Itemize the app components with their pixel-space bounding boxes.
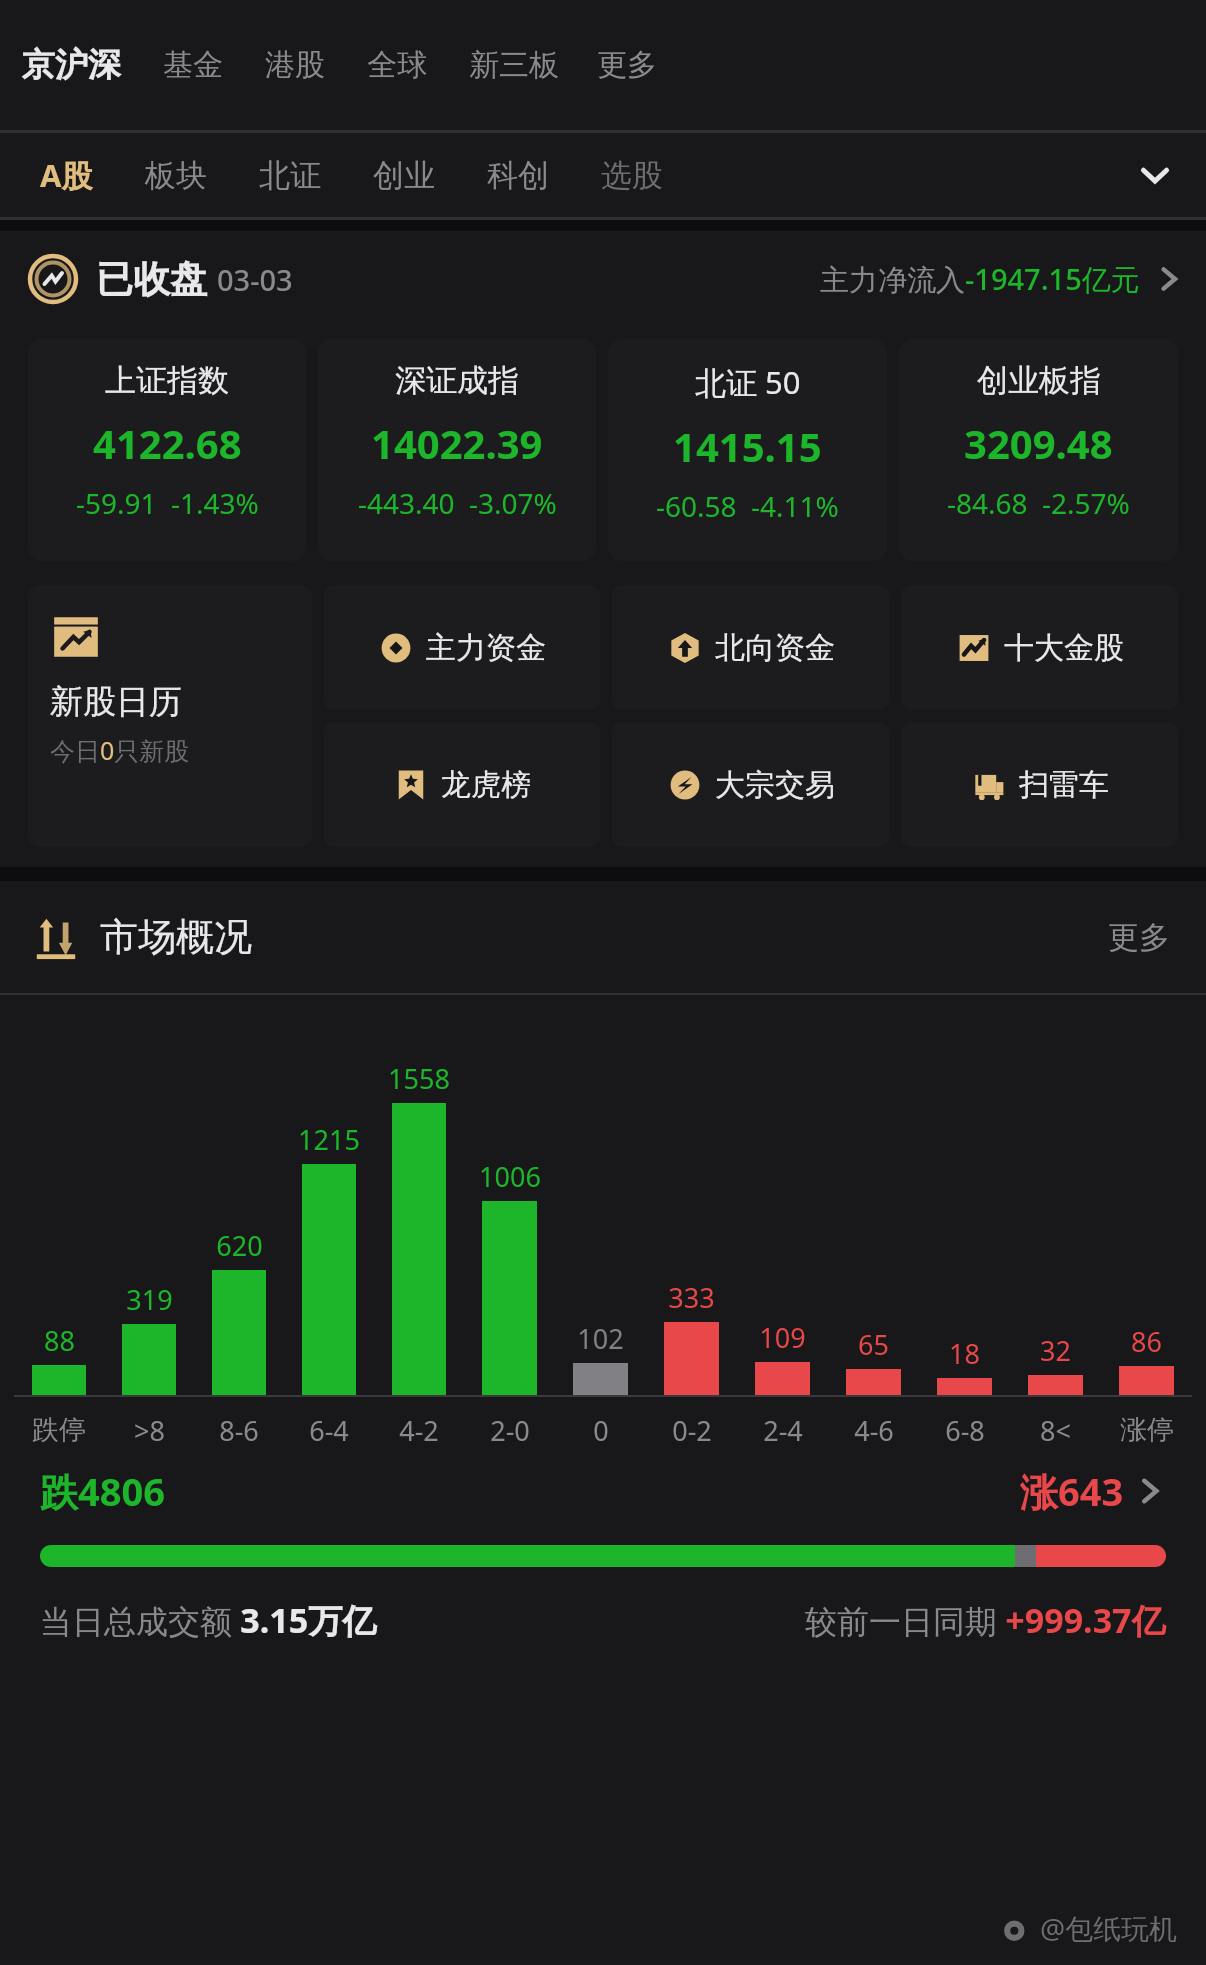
button[interactable]: 新三板	[469, 38, 559, 92]
staticText: -1.43%	[171, 484, 259, 522]
staticText: 已收盘	[96, 256, 207, 303]
staticText: 620	[216, 1227, 263, 1264]
button[interactable]: 已收盘	[0, 231, 1206, 327]
staticText: 18	[949, 1335, 980, 1372]
button[interactable]: 科创	[487, 148, 549, 203]
staticText: 4-6	[854, 1412, 894, 1449]
button[interactable]: 主力资金	[324, 585, 600, 710]
button[interactable]: 扫雷车	[901, 722, 1178, 847]
button[interactable]: 大宗交易	[612, 722, 889, 847]
staticText: 当日总成交额 3.15万亿	[40, 1597, 377, 1643]
button[interactable]: 北证 50	[608, 339, 887, 561]
staticText: 北证	[259, 156, 321, 195]
staticText: 8<	[1040, 1412, 1071, 1449]
staticText: >8	[134, 1412, 165, 1449]
button[interactable]: 港股	[265, 38, 325, 92]
staticText: 32	[1040, 1332, 1071, 1369]
staticText: 涨停	[1120, 1413, 1174, 1447]
staticText: 创业	[373, 156, 435, 195]
staticText: 基金	[163, 46, 223, 84]
staticText: 龙虎榜	[441, 766, 531, 804]
staticText: 创业板指	[977, 361, 1101, 400]
staticText: 北向资金	[715, 629, 835, 667]
staticText: 6-4	[309, 1412, 349, 1449]
staticText: -443.40	[358, 484, 455, 522]
staticText: 03-03	[217, 260, 293, 299]
staticText: 港股	[265, 46, 325, 84]
staticText: 14022.39	[371, 416, 543, 470]
button[interactable]: 板块	[145, 148, 207, 203]
staticText: 板块	[145, 156, 207, 195]
button[interactable]: 更多	[1100, 910, 1178, 965]
staticText: 2-0	[490, 1412, 530, 1449]
staticText: 十大金股	[1004, 629, 1124, 667]
staticText: 8-6	[219, 1412, 259, 1449]
staticText: 4-2	[399, 1412, 439, 1449]
button[interactable]: 北向资金	[612, 585, 889, 710]
button[interactable]: 创业	[373, 148, 435, 203]
button[interactable]: 京沪深	[22, 36, 121, 94]
staticText: 86	[1131, 1323, 1162, 1360]
button[interactable]: 上证指数	[28, 339, 306, 561]
staticText: 扫雷车	[1019, 766, 1109, 804]
staticText: 109	[759, 1319, 806, 1356]
button[interactable]: 选股	[601, 148, 663, 203]
button[interactable]: 更多	[597, 38, 657, 92]
button[interactable]: 全球	[367, 38, 427, 92]
staticText: 涨643	[1020, 1465, 1124, 1517]
button[interactable]: 跌4806	[40, 1465, 1166, 1517]
button[interactable]: A股	[40, 146, 93, 204]
button[interactable]: 十大金股	[901, 585, 1178, 710]
button[interactable]: 龙虎榜	[324, 722, 600, 847]
staticText: 1558	[388, 1060, 450, 1097]
staticText: 市场概况	[100, 913, 252, 961]
staticText: 88	[44, 1322, 75, 1359]
staticText: -3.07%	[469, 484, 557, 522]
staticText: 跌4806	[40, 1465, 165, 1517]
staticText: -4.11%	[751, 487, 839, 525]
staticText: 2-4	[763, 1412, 803, 1449]
staticText: 大宗交易	[715, 766, 835, 804]
staticText: 6-8	[945, 1412, 985, 1449]
staticText: 0	[593, 1412, 609, 1449]
staticText: 选股	[601, 156, 663, 195]
button[interactable]: 创业板指	[899, 339, 1178, 561]
staticText: 新三板	[469, 46, 559, 84]
staticText: 北证 50	[695, 361, 801, 403]
staticText: 深证成指	[395, 361, 519, 400]
staticText: 更多	[597, 46, 657, 84]
button[interactable]: Expand tabs	[1128, 148, 1182, 202]
staticText: 科创	[487, 156, 549, 195]
staticText: 全球	[367, 46, 427, 84]
button[interactable]: 深证成指	[318, 339, 596, 561]
staticText: 更多	[1108, 918, 1170, 957]
staticText: -84.68	[947, 484, 1028, 522]
staticText: 0-2	[672, 1412, 712, 1449]
staticText: 102	[577, 1320, 624, 1357]
staticText: 3209.48	[964, 416, 1113, 470]
staticText: 新股日历	[50, 681, 182, 723]
button[interactable]: 新股日历	[28, 585, 312, 847]
staticText: 京沪深	[22, 44, 121, 86]
staticText: 4122.68	[93, 416, 242, 470]
staticText: 主力资金	[426, 629, 546, 667]
staticText: -60.58	[656, 487, 737, 525]
staticText: 1415.15	[673, 419, 822, 473]
staticText: 跌停	[32, 1413, 86, 1447]
staticText: 主力净流入-1947.15亿元	[820, 259, 1140, 299]
button[interactable]: 基金	[163, 38, 223, 92]
staticText: 1215	[298, 1121, 360, 1158]
staticText: 333	[668, 1279, 715, 1316]
staticText: 65	[858, 1326, 889, 1363]
button[interactable]: 北证	[259, 148, 321, 203]
staticText: A股	[40, 154, 93, 196]
staticText: @包纸玩机	[1040, 1909, 1178, 1947]
staticText: 319	[126, 1281, 173, 1318]
staticText: 上证指数	[105, 361, 229, 400]
staticText: 较前一日同期 +999.37亿	[805, 1597, 1166, 1643]
staticText: -59.91	[76, 484, 157, 522]
staticText: 1006	[479, 1158, 541, 1195]
staticText: -2.57%	[1042, 484, 1130, 522]
staticText: 今日0只新股	[50, 733, 190, 767]
